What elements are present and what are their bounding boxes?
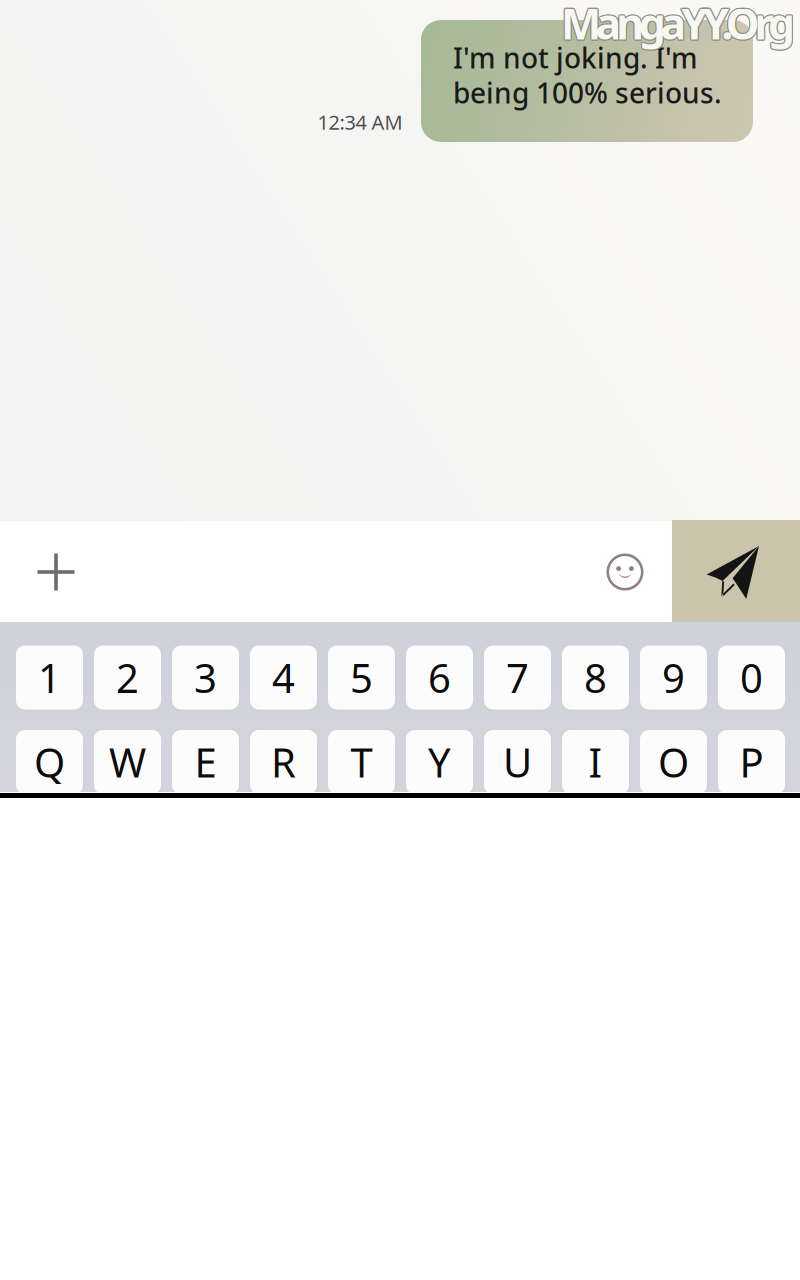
staticText: MangaYY.Org <box>562 0 796 51</box>
button[interactable]: I <box>562 730 629 794</box>
staticText: 4 <box>272 651 295 704</box>
staticText: 7 <box>506 651 529 704</box>
staticText: 6 <box>428 651 451 704</box>
staticText: 8 <box>584 651 607 704</box>
button[interactable]: 0 <box>718 645 785 709</box>
staticText: 9 <box>662 651 685 704</box>
staticText: 3 <box>194 651 217 704</box>
button[interactable]: 2 <box>94 645 161 709</box>
button[interactable]: 9 <box>640 645 707 709</box>
button[interactable]: 3 <box>172 645 239 709</box>
button[interactable]: U <box>484 730 551 794</box>
staticText: Q <box>34 735 65 788</box>
staticText: MangaYY.Org <box>561 0 795 52</box>
button[interactable]: Emoji <box>577 521 673 622</box>
button[interactable]: 1 <box>16 645 83 709</box>
staticText: T <box>350 735 372 788</box>
button[interactable]: 5 <box>328 645 395 709</box>
staticText: 0 <box>740 651 763 704</box>
staticText: MangaYY.Org <box>560 0 794 51</box>
staticText: MangaYY.Org <box>562 0 796 50</box>
staticText: MangaYY.Org <box>562 0 796 52</box>
staticText: Y <box>428 735 451 788</box>
staticText: R <box>271 735 296 788</box>
staticText: MangaYY.Org <box>562 0 796 52</box>
button[interactable]: Q <box>16 730 83 794</box>
staticText: MangaYY.Org <box>560 0 794 51</box>
staticText: 2 <box>116 651 139 704</box>
button[interactable]: O <box>640 730 707 794</box>
staticText: MangaYY.Org <box>560 0 794 52</box>
staticText: MangaYY.Org <box>560 0 794 50</box>
button[interactable]: 7 <box>484 645 551 709</box>
button[interactable]: Add attachment <box>0 521 112 622</box>
staticText: P <box>739 735 763 788</box>
staticText: I'm not joking. I'm <box>453 39 698 76</box>
button[interactable]: Send <box>672 520 800 623</box>
staticText: 5 <box>350 651 373 704</box>
staticText: W <box>109 735 146 788</box>
staticText: MangaYY.Org <box>560 0 794 52</box>
button[interactable]: P <box>718 730 785 794</box>
staticText: 1 <box>38 651 61 704</box>
staticText: being 100% serious. <box>453 74 722 111</box>
button[interactable]: 6 <box>406 645 473 709</box>
staticText: 12:34 AM <box>317 109 402 135</box>
staticText: U <box>503 735 532 788</box>
staticText: MangaYY.Org <box>561 0 795 51</box>
staticText: O <box>658 735 689 788</box>
button[interactable]: T <box>328 730 395 794</box>
button[interactable]: R <box>250 730 317 794</box>
button[interactable]: Y <box>406 730 473 794</box>
button[interactable]: 4 <box>250 645 317 709</box>
button[interactable]: E <box>172 730 239 794</box>
button[interactable]: W <box>94 730 161 794</box>
staticText: E <box>194 735 216 788</box>
staticText: I <box>588 735 602 788</box>
staticText: MangaYY.Org <box>561 0 795 50</box>
button[interactable]: 8 <box>562 645 629 709</box>
staticText: MangaYY.Org <box>562 0 796 51</box>
